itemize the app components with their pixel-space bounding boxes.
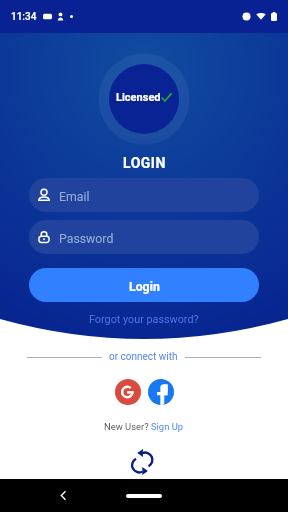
button[interactable]: Email xyxy=(29,178,259,212)
button[interactable]: Sign in with Facebook xyxy=(148,379,174,405)
button[interactable]: Login xyxy=(29,268,259,302)
staticText: Password xyxy=(59,232,114,246)
staticText: Login xyxy=(129,280,160,294)
button[interactable]: Forgot your password? xyxy=(85,311,203,328)
button[interactable]: Refresh xyxy=(130,448,158,476)
button[interactable]: Back xyxy=(58,490,69,501)
button[interactable]: Password xyxy=(29,220,259,254)
staticText: New User? xyxy=(104,421,151,432)
staticText: Email xyxy=(59,190,90,204)
button[interactable]: Sign in with Google xyxy=(115,379,141,405)
button[interactable]: Sign Up xyxy=(151,421,184,432)
staticText: Licensed xyxy=(116,91,161,104)
button[interactable]: Home xyxy=(126,494,162,498)
staticText: LOGIN xyxy=(123,155,166,171)
staticText: 11:34 xyxy=(11,11,37,23)
staticText: or connect with xyxy=(109,351,178,363)
